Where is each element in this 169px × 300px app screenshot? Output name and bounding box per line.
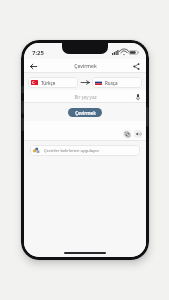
button[interactable]: Türkçe xyxy=(28,77,78,88)
button[interactable]: Listen xyxy=(134,130,142,138)
button[interactable]: Share xyxy=(131,61,142,72)
staticText: Çeviriler belirlenen uygulayıcı xyxy=(44,148,100,153)
staticText: Çevirmek xyxy=(75,110,96,116)
button[interactable]: Bir şey yaz xyxy=(24,90,146,103)
button[interactable]: Copy xyxy=(123,130,131,138)
button[interactable]: Rusça xyxy=(92,77,142,88)
staticText: Rusça xyxy=(105,80,118,86)
button[interactable]: Voice input xyxy=(133,92,142,101)
staticText: Çevirmek xyxy=(74,63,97,70)
staticText: Türkçe xyxy=(41,80,56,86)
staticText: Bir şey yaz xyxy=(74,94,97,100)
button[interactable]: Çevirmek xyxy=(68,108,102,117)
staticText: 7:25 xyxy=(32,49,44,57)
button[interactable]: Çeviriler belirlenen uygulayıcı xyxy=(30,145,140,156)
button[interactable]: Back xyxy=(28,61,39,72)
